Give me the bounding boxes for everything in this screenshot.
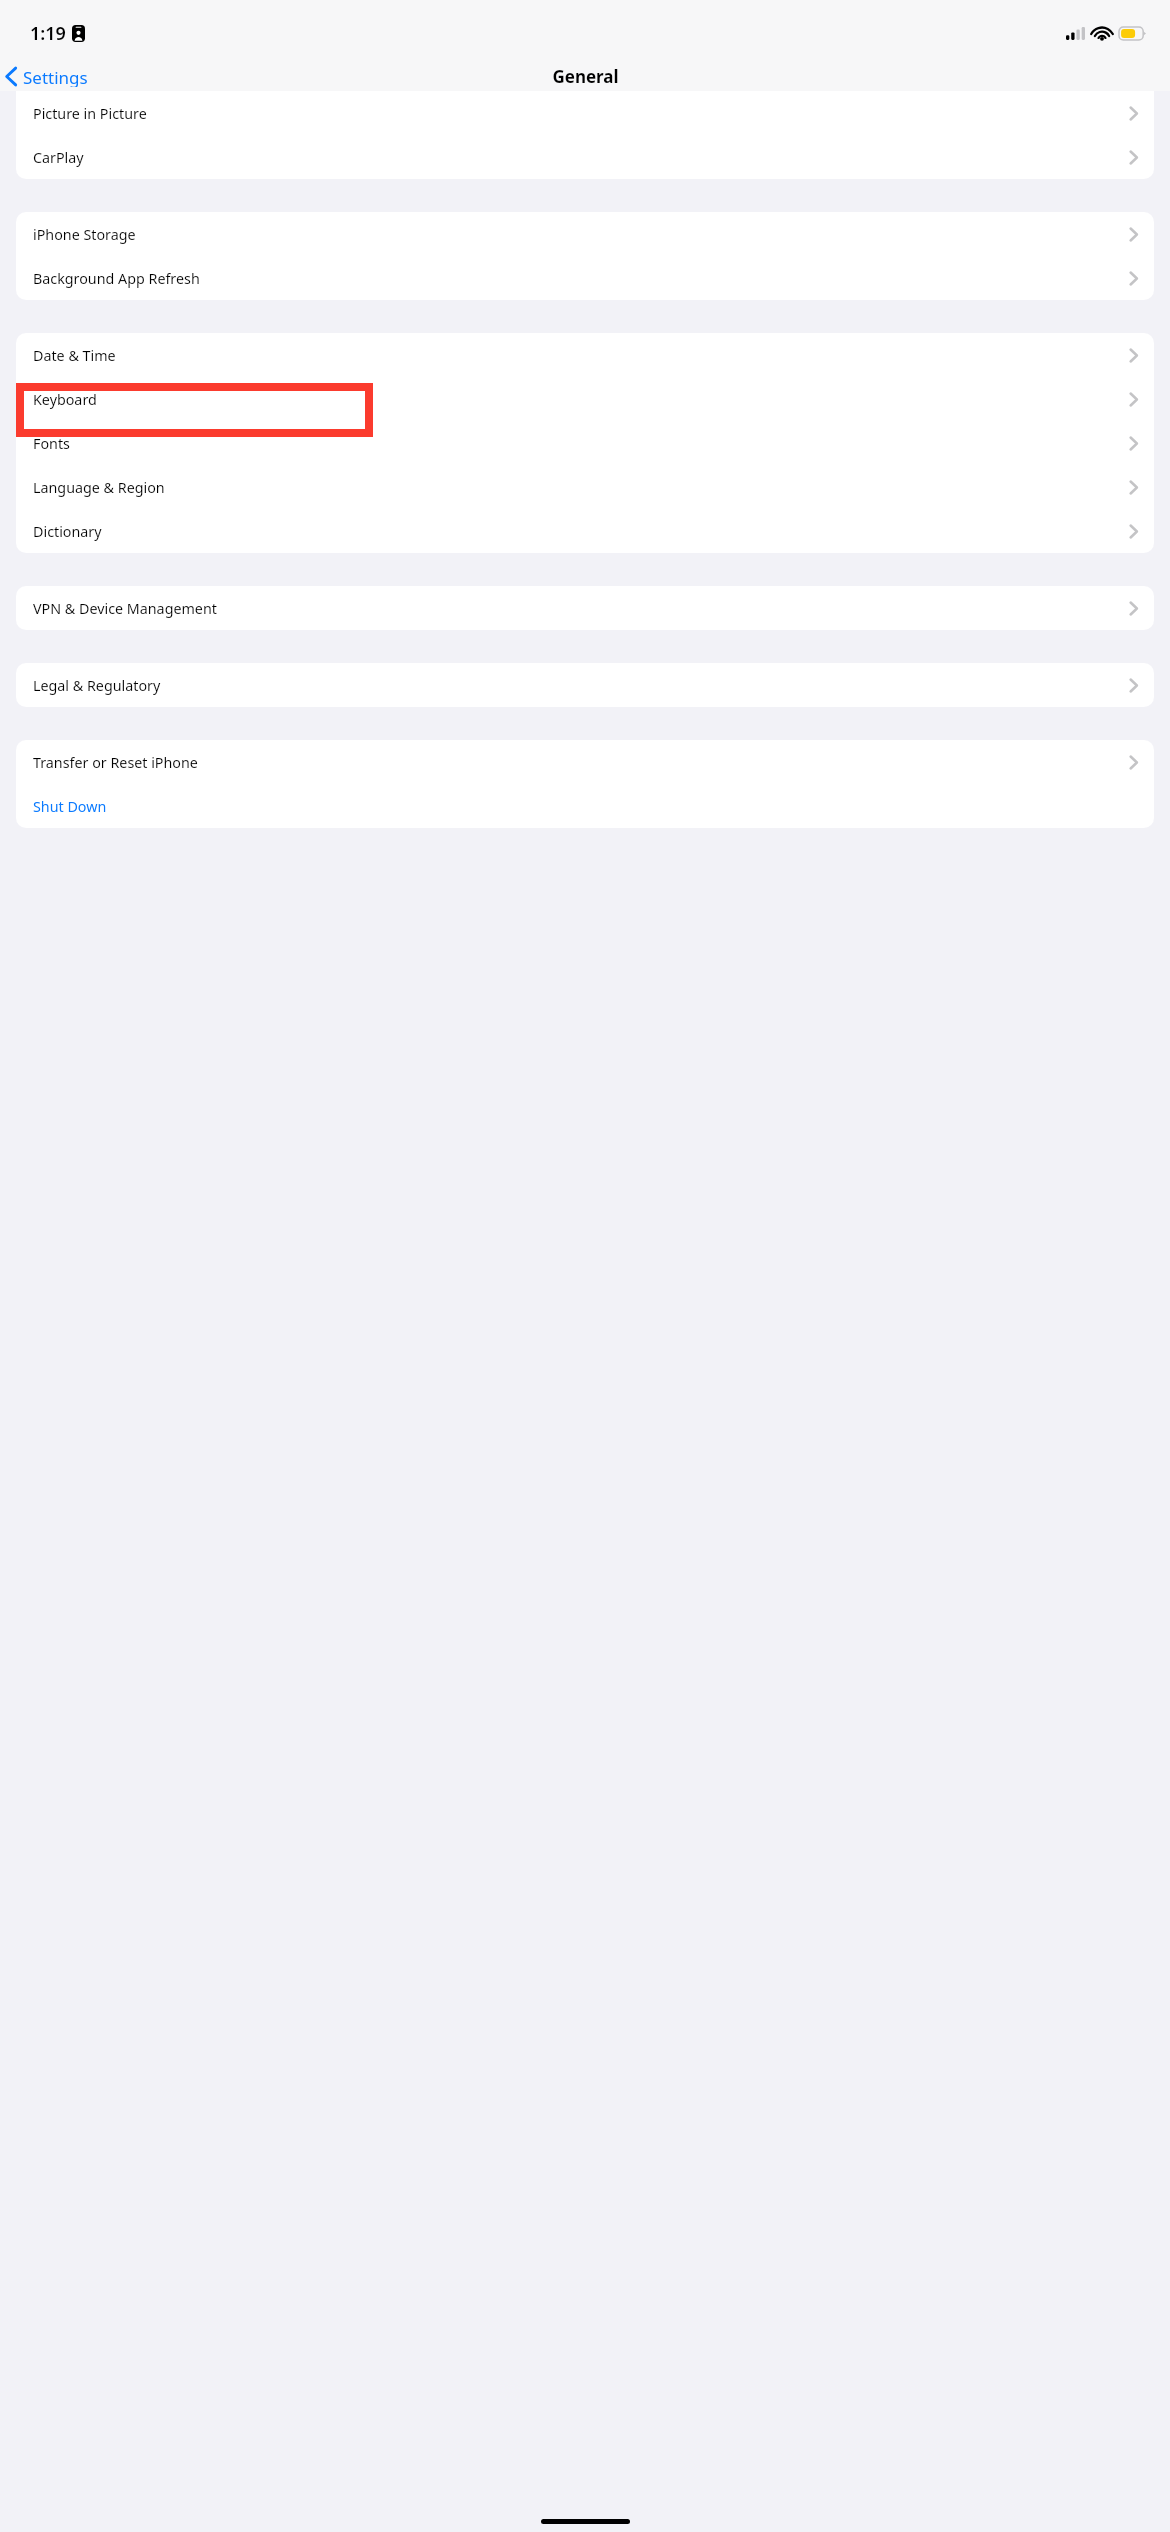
other: Open	[1129, 601, 1138, 616]
button[interactable]: VPN & Device Management	[16, 586, 1154, 630]
other: Open	[1129, 271, 1138, 286]
other: Open	[1129, 755, 1138, 770]
button[interactable]: Background App Refresh	[16, 256, 1154, 300]
button[interactable]: Fonts	[16, 421, 1154, 465]
staticText: Language & Region	[33, 478, 165, 497]
staticText: Fonts	[33, 434, 70, 453]
other: Open	[1129, 106, 1138, 121]
button[interactable]: Settings	[0, 62, 96, 91]
staticText: iPhone Storage	[33, 225, 136, 244]
staticText: Shut Down	[33, 797, 107, 816]
button[interactable]: Transfer or Reset iPhone	[16, 740, 1154, 784]
button[interactable]: Picture in Picture	[16, 91, 1154, 135]
other: Open	[1129, 524, 1138, 539]
staticText: Dictionary	[33, 522, 102, 541]
other: Open	[1129, 348, 1138, 363]
button[interactable]: Legal & Regulatory	[16, 663, 1154, 707]
staticText: Settings	[23, 66, 88, 87]
other: Open	[1129, 480, 1138, 495]
staticText: Keyboard	[33, 390, 97, 409]
staticText: Date & Time	[33, 346, 116, 365]
staticText: VPN & Device Management	[33, 599, 217, 618]
staticText: CarPlay	[33, 148, 84, 167]
staticText: Transfer or Reset iPhone	[33, 753, 198, 772]
staticText: Legal & Regulatory	[33, 676, 161, 695]
button[interactable]: iPhone Storage	[16, 212, 1154, 256]
button[interactable]: Shut Down	[16, 784, 1154, 828]
button[interactable]: Dictionary	[16, 509, 1154, 553]
button[interactable]: Keyboard	[16, 377, 1154, 421]
staticText: Picture in Picture	[33, 104, 147, 123]
other: Open	[1129, 678, 1138, 693]
button[interactable]: Language & Region	[16, 465, 1154, 509]
other: Open	[1129, 227, 1138, 242]
button[interactable]: CarPlay	[16, 135, 1154, 179]
other: Open	[1129, 150, 1138, 165]
staticText: 1:19	[30, 21, 66, 46]
staticText: General	[552, 65, 619, 88]
other: Open	[1129, 392, 1138, 407]
other: Open	[1129, 436, 1138, 451]
button[interactable]: Date & Time	[16, 333, 1154, 377]
staticText: Background App Refresh	[33, 269, 200, 288]
